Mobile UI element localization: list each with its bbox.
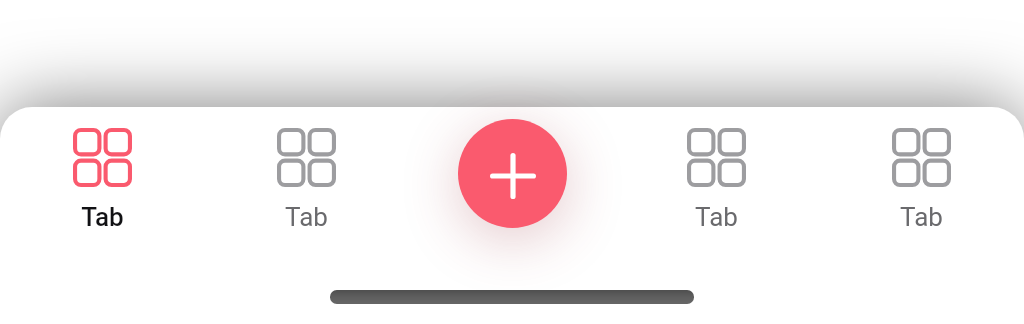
staticText: Tab	[695, 202, 738, 232]
staticText: Tab	[285, 202, 328, 232]
staticText: Tab	[81, 202, 124, 232]
button[interactable]: Tab	[614, 107, 819, 267]
staticText: Tab	[900, 202, 943, 232]
button[interactable]: Add	[458, 119, 567, 228]
button[interactable]: Tab	[204, 107, 409, 267]
button[interactable]: Tab	[0, 107, 204, 267]
button[interactable]: Tab	[819, 107, 1024, 267]
